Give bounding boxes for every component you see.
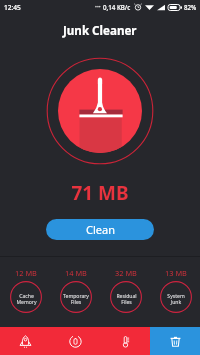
button[interactable]: 14 MB [51,268,101,313]
staticText: Residual Files [116,293,137,306]
button[interactable]: Clean [46,219,154,240]
button[interactable]: CPU Cooler [100,327,150,355]
button[interactable]: 13 MB [151,268,200,313]
staticText: Junk Cleaner [63,23,137,39]
staticText: System Junk [167,293,185,306]
staticText: 12 MB [15,268,37,278]
staticText: 32 MB [115,268,137,278]
staticText: 14 MB [65,268,87,278]
button[interactable]: 12 MB [1,268,51,313]
staticText: 12:45 [4,3,21,12]
button[interactable]: Battery Saver [50,327,100,355]
button[interactable]: 32 MB [101,268,151,313]
button[interactable]: Junk Cleaner [150,327,200,355]
staticText: 82% [184,3,197,11]
staticText: ••• [95,4,101,11]
button[interactable]: Boost [0,327,50,355]
staticText: 13 MB [165,268,187,278]
staticText: Temporary Files [63,293,89,306]
staticText: Cache Memory [16,293,37,306]
staticText: 71 MB [0,180,200,206]
staticText: 0,14 KB/c [103,3,131,11]
staticText: Clean [86,222,115,237]
